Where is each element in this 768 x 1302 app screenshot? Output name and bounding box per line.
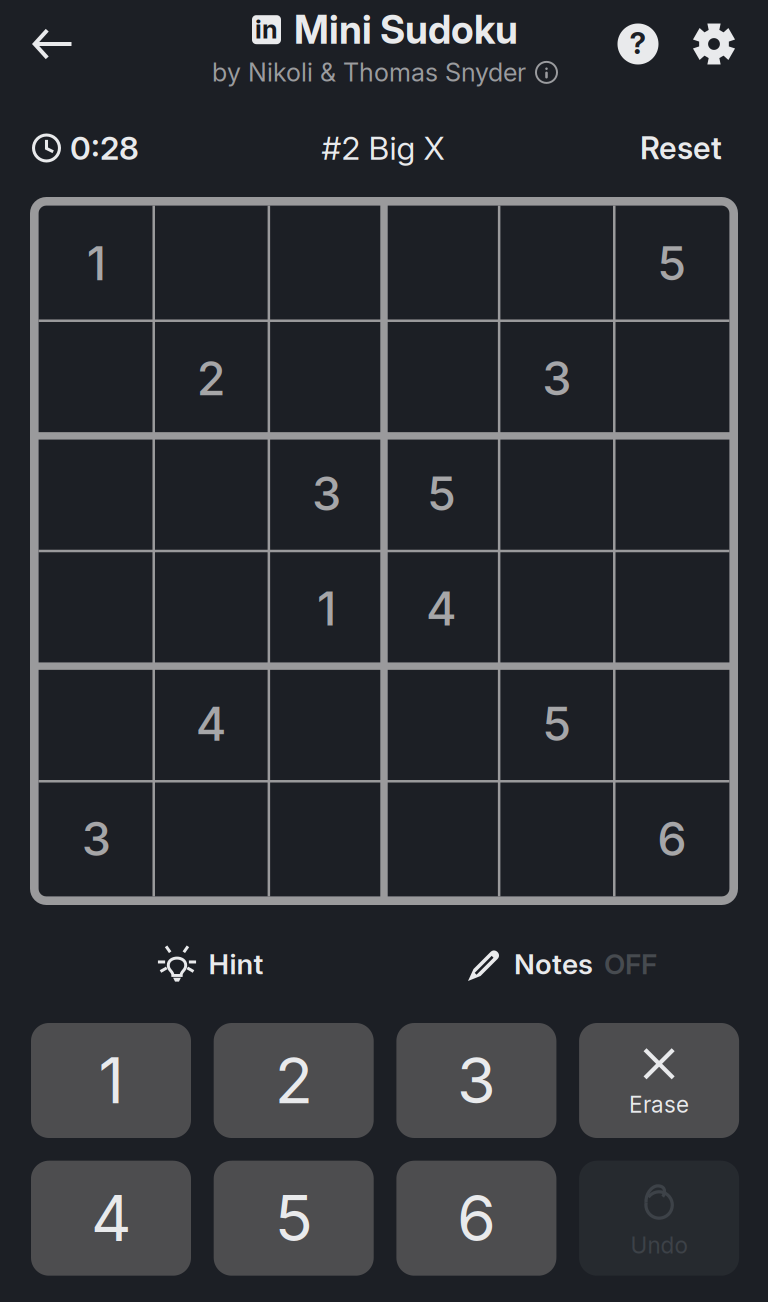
staticText: 4 — [426, 580, 457, 637]
button[interactable]: 6 — [396, 1161, 556, 1276]
staticText: 1 — [87, 235, 106, 291]
staticText: 2 — [197, 350, 226, 407]
staticText: 3 — [457, 1043, 496, 1118]
staticText: Erase — [629, 1091, 689, 1118]
staticText: Reset — [640, 129, 722, 166]
staticText: Hint — [208, 947, 263, 981]
button[interactable]: 2 — [214, 1023, 374, 1138]
button[interactable]: 4 — [31, 1161, 191, 1276]
button[interactable]: Erase — [579, 1023, 739, 1138]
button[interactable]: Help — [609, 15, 667, 73]
staticText: 5 — [427, 465, 456, 522]
staticText: Undo — [631, 1231, 688, 1259]
button[interactable]: 5 — [214, 1161, 374, 1276]
button[interactable]: 3 — [396, 1023, 556, 1138]
staticText: 6 — [457, 1180, 496, 1256]
staticText: by Nikoli & Thomas Snyder — [212, 57, 526, 88]
staticText: 4 — [91, 1180, 131, 1256]
staticText: ? — [629, 25, 646, 61]
staticText: Mini Sudoku — [294, 6, 518, 53]
button[interactable]: Undo — [579, 1161, 739, 1276]
button[interactable]: Back — [13, 11, 93, 77]
staticText: 3 — [312, 465, 341, 522]
staticText: 5 — [657, 235, 686, 291]
staticText: 2 — [275, 1043, 313, 1118]
staticText: 3 — [82, 811, 111, 867]
staticText: 3 — [542, 350, 571, 407]
staticText: 5 — [275, 1180, 313, 1256]
button[interactable]: Reset — [582, 126, 722, 170]
button[interactable]: 1 — [31, 1023, 191, 1138]
staticText: in — [255, 14, 278, 45]
button[interactable]: Settings — [685, 15, 743, 73]
staticText: 1 — [317, 580, 336, 637]
staticText: OFF — [604, 947, 657, 981]
staticText: 0:28 — [70, 129, 139, 167]
staticText: Notes — [514, 947, 593, 981]
staticText: 5 — [542, 695, 571, 752]
staticText: 4 — [196, 695, 227, 752]
staticText: 6 — [657, 811, 686, 867]
button[interactable]: Notes — [410, 935, 710, 993]
staticText: 1 — [98, 1043, 123, 1118]
button[interactable]: Hint — [90, 935, 330, 993]
staticText: #2 Big X — [321, 129, 444, 167]
